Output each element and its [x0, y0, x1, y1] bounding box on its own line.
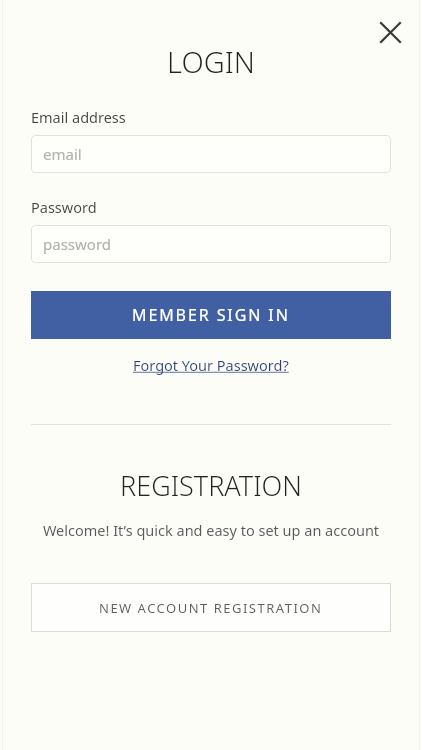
button[interactable]: password	[31, 225, 391, 263]
staticText: NEW ACCOUNT REGISTRATION	[99, 599, 323, 617]
staticText: Email address	[31, 107, 126, 127]
staticText: Welcome! It’s quick and easy to set up a…	[36, 520, 386, 540]
staticText: Forgot Your Password?	[133, 355, 289, 375]
button[interactable]: Close	[370, 12, 410, 52]
button[interactable]: Forgot Your Password?	[129, 353, 293, 377]
staticText: email	[43, 144, 82, 164]
button[interactable]: MEMBER SIGN IN	[31, 291, 391, 339]
staticText: MEMBER SIGN IN	[132, 304, 290, 326]
button[interactable]: email	[31, 135, 391, 173]
staticText: REGISTRATION	[31, 467, 391, 504]
button[interactable]: NEW ACCOUNT REGISTRATION	[31, 583, 391, 632]
staticText: LOGIN	[31, 42, 391, 81]
staticText: password	[43, 234, 111, 254]
staticText: Password	[31, 197, 97, 217]
